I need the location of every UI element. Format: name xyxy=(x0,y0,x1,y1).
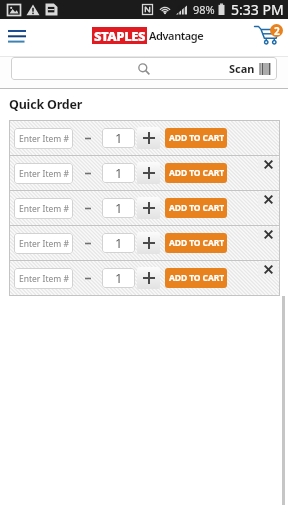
staticText: 1 xyxy=(115,269,123,287)
button[interactable]: ADD TO CART xyxy=(165,128,227,148)
staticText: Scan xyxy=(229,61,255,76)
button[interactable]: Decrease quantity xyxy=(79,127,97,149)
staticText: Enter Item # xyxy=(19,133,69,145)
button[interactable]: Decrease quantity xyxy=(79,232,97,254)
button[interactable]: Remove row xyxy=(258,157,278,171)
button[interactable]: Navigation menu xyxy=(0,19,34,56)
staticText: Advantage xyxy=(149,28,204,43)
button[interactable]: Increase quantity xyxy=(137,232,160,254)
button[interactable]: ADD TO CART xyxy=(165,268,227,288)
staticText: ADD TO CART xyxy=(169,132,224,144)
button[interactable]: Increase quantity xyxy=(137,162,160,184)
button[interactable]: Enter Item # xyxy=(14,233,73,254)
button[interactable]: Increase quantity xyxy=(137,197,160,219)
button[interactable]: ADD TO CART xyxy=(165,198,227,218)
button[interactable]: Remove row xyxy=(258,227,278,241)
button[interactable]: Remove row xyxy=(258,262,278,276)
staticText: 2 xyxy=(274,24,280,37)
button[interactable]: Decrease quantity xyxy=(79,267,97,289)
button[interactable]: Enter Item # xyxy=(14,198,73,219)
button[interactable]: Enter Item # xyxy=(14,128,73,149)
staticText: ADD TO CART xyxy=(169,202,224,214)
button[interactable]: ADD TO CART xyxy=(165,163,227,183)
button[interactable]: ADD TO CART xyxy=(165,233,227,253)
staticText: STAPLES xyxy=(94,27,145,44)
button[interactable]: Enter Item # xyxy=(14,163,73,184)
staticText: 1 xyxy=(115,129,123,147)
staticText: Enter Item # xyxy=(19,168,69,180)
button[interactable]: Decrease quantity xyxy=(79,162,97,184)
staticText: 1 xyxy=(115,234,123,252)
button[interactable]: Shopping cart, 2 items xyxy=(250,19,288,56)
button[interactable]: Scan xyxy=(11,57,277,80)
button[interactable]: 1 xyxy=(102,163,135,183)
staticText: Enter Item # xyxy=(19,203,69,215)
button[interactable]: Enter Item # xyxy=(14,268,73,289)
staticText: Enter Item # xyxy=(19,238,69,250)
button[interactable]: 1 xyxy=(102,128,135,148)
staticText: ADD TO CART xyxy=(169,167,224,179)
button[interactable]: 1 xyxy=(102,198,135,218)
staticText: Enter Item # xyxy=(19,273,69,285)
button[interactable]: 1 xyxy=(102,268,135,288)
button[interactable]: Increase quantity xyxy=(137,267,160,289)
button[interactable]: 1 xyxy=(102,233,135,253)
staticText: 1 xyxy=(115,199,123,217)
staticText: 1 xyxy=(115,164,123,182)
button[interactable]: Decrease quantity xyxy=(79,197,97,219)
staticText: 5:33 PM xyxy=(231,0,284,19)
button[interactable]: Remove row xyxy=(258,192,278,206)
staticText: 98% xyxy=(193,2,215,17)
staticText: ADD TO CART xyxy=(169,237,224,249)
staticText: ADD TO CART xyxy=(169,272,224,284)
staticText: Quick Order xyxy=(9,96,83,113)
button[interactable]: Increase quantity xyxy=(137,127,160,149)
